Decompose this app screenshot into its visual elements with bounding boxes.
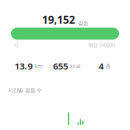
staticText: 13.9 <box>14 60 32 72</box>
staticText: km <box>34 62 42 69</box>
staticText: 0 <box>15 42 18 49</box>
staticText: 걸음 <box>78 20 88 27</box>
staticText: 4 <box>98 60 103 72</box>
staticText: 655 <box>53 60 68 72</box>
staticText: 19,152 <box>42 12 75 27</box>
staticText: 목표 14,000 <box>88 42 115 49</box>
staticText: kcal <box>70 62 80 69</box>
staticText: 시간별 걸음 수 <box>8 87 42 94</box>
staticText: 층 <box>105 63 110 69</box>
